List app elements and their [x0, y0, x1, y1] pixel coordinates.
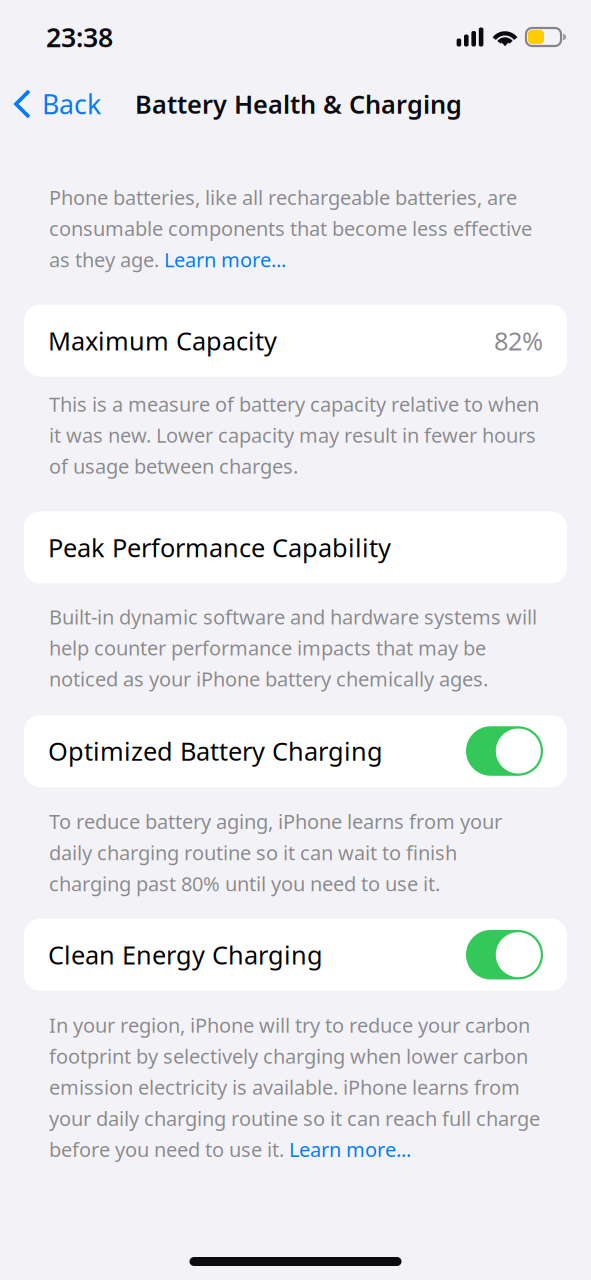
staticText: Battery Health & Charging — [135, 87, 462, 121]
staticText: Back — [42, 86, 101, 122]
button[interactable]: Peak Performance Capability — [24, 511, 567, 583]
staticText: In your region, iPhone will try to reduc… — [49, 1012, 540, 1162]
staticText: 23:38 — [46, 19, 113, 55]
staticText: Optimized Battery Charging — [48, 734, 383, 768]
button[interactable]: Optimized Battery Charging — [24, 715, 567, 787]
staticText: 82% — [494, 324, 543, 357]
staticText: Phone batteries, like all rechargeable b… — [49, 184, 532, 273]
button[interactable]: Clean Energy Charging — [24, 919, 567, 991]
staticText: Peak Performance Capability — [48, 530, 391, 564]
staticText: This is a measure of battery capacity re… — [49, 391, 539, 479]
staticText: Built-in dynamic software and hardware s… — [49, 603, 537, 692]
staticText: Clean Energy Charging — [48, 938, 323, 971]
staticText: To reduce battery aging, iPhone learns f… — [49, 808, 502, 897]
button[interactable]: Back — [0, 76, 115, 132]
staticText: Maximum Capacity — [48, 324, 277, 357]
button[interactable]: Maximum Capacity — [24, 305, 567, 377]
